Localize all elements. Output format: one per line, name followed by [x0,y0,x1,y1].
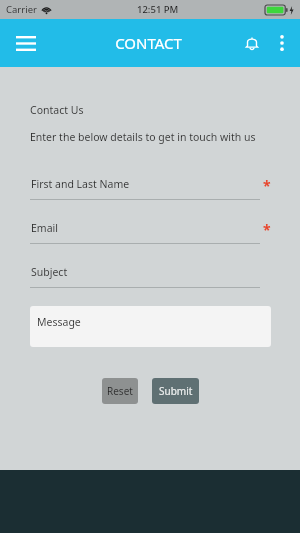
staticText: Subject [31,265,68,279]
button[interactable]: More options [268,29,296,57]
button[interactable]: Email [30,221,271,244]
staticText: Message [37,315,81,329]
staticText: Submit [159,384,193,398]
button[interactable]: Notifications [236,27,268,59]
staticText: Reset [107,384,133,398]
staticText: First and Last Name [31,177,130,191]
staticText: Contact Us [30,103,84,117]
button[interactable]: Reset [102,378,138,404]
staticText: CONTACT [115,33,182,53]
staticText: * [263,220,271,239]
button[interactable]: Submit [152,378,199,404]
button[interactable]: First and Last Name [30,177,271,200]
staticText: Carrier [6,3,37,16]
staticText: 12:51 PM [137,3,179,16]
staticText: Enter the below details to get in touch … [30,130,256,144]
button[interactable]: Open navigation menu [8,25,44,61]
staticText: * [263,176,271,195]
button[interactable]: Subject [30,265,271,288]
button[interactable]: Message [30,306,271,347]
staticText: Email [31,221,58,235]
